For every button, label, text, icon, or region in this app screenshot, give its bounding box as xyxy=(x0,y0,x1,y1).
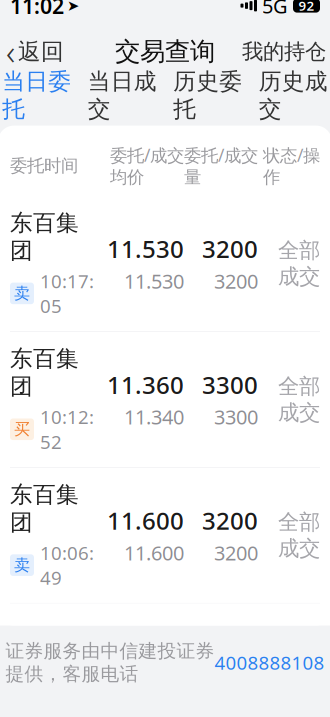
staticText: 3300 xyxy=(214,404,258,430)
staticText: 委托/成交量 xyxy=(184,144,258,188)
staticText: 92 xyxy=(298,0,314,14)
staticText: 全部成交 xyxy=(278,509,320,561)
staticText: 10:06:49 xyxy=(40,540,94,590)
staticText: 东百集团 xyxy=(10,345,79,400)
staticText: 委托/成交均价 xyxy=(110,144,184,188)
staticText: 状态/操作 xyxy=(263,144,320,188)
staticText: 卖 xyxy=(14,555,30,575)
button[interactable]: 当日成交 xyxy=(79,61,165,136)
staticText: 3200 xyxy=(202,233,258,265)
button[interactable]: ‹ xyxy=(0,23,74,81)
staticText: 卖 xyxy=(14,284,30,303)
staticText: 3300 xyxy=(202,369,258,401)
staticText: 委托时间 xyxy=(10,155,78,176)
staticText: 10:12:52 xyxy=(40,404,94,454)
staticText: 11.340 xyxy=(124,404,184,430)
staticText: 历史委托 xyxy=(173,67,242,123)
staticText: 10:17:05 xyxy=(40,269,94,318)
button[interactable]: 历史委托 xyxy=(165,61,250,136)
staticText: 东百集团 xyxy=(10,209,79,265)
button[interactable]: 证券服务由中信建投证券提供，客服电话 xyxy=(0,633,330,691)
button[interactable]: 我的持仓 xyxy=(234,32,330,71)
staticText: 11.530 xyxy=(124,268,184,294)
staticText: 11:02 xyxy=(10,0,64,20)
staticText: 返回 xyxy=(18,38,64,65)
staticText: ➤ xyxy=(67,0,79,14)
button[interactable]: 东百集团 xyxy=(0,196,330,331)
staticText: 东百集团 xyxy=(10,481,79,536)
staticText: 证券服务由中信建投证券提供，客服电话 xyxy=(5,639,214,685)
staticText: 全部成交 xyxy=(278,237,320,290)
staticText: 11.530 xyxy=(107,233,184,265)
staticText: 11.600 xyxy=(107,505,184,536)
staticText: 当日成交 xyxy=(88,67,157,123)
button[interactable]: 历史成交 xyxy=(250,61,330,136)
staticText: 3200 xyxy=(202,505,258,536)
staticText: ‹ xyxy=(6,29,15,75)
button[interactable]: 东百集团 xyxy=(0,468,330,603)
staticText: 当日委托 xyxy=(2,67,71,123)
staticText: 11.360 xyxy=(107,369,184,401)
staticText: 11.600 xyxy=(124,539,184,566)
staticText: 历史成交 xyxy=(259,67,328,123)
button[interactable]: 当日委托 xyxy=(0,61,79,136)
staticText: 买 xyxy=(14,419,30,439)
button[interactable]: 东百集团 xyxy=(0,332,330,467)
staticText: 3200 xyxy=(214,539,258,566)
staticText: 3200 xyxy=(214,268,258,294)
staticText: 全部成交 xyxy=(278,373,320,426)
staticText: 我的持仓 xyxy=(242,38,326,65)
staticText: 交易查询 xyxy=(115,36,215,67)
staticText: 5G xyxy=(262,0,288,19)
staticText: 4008888108 xyxy=(214,650,324,675)
